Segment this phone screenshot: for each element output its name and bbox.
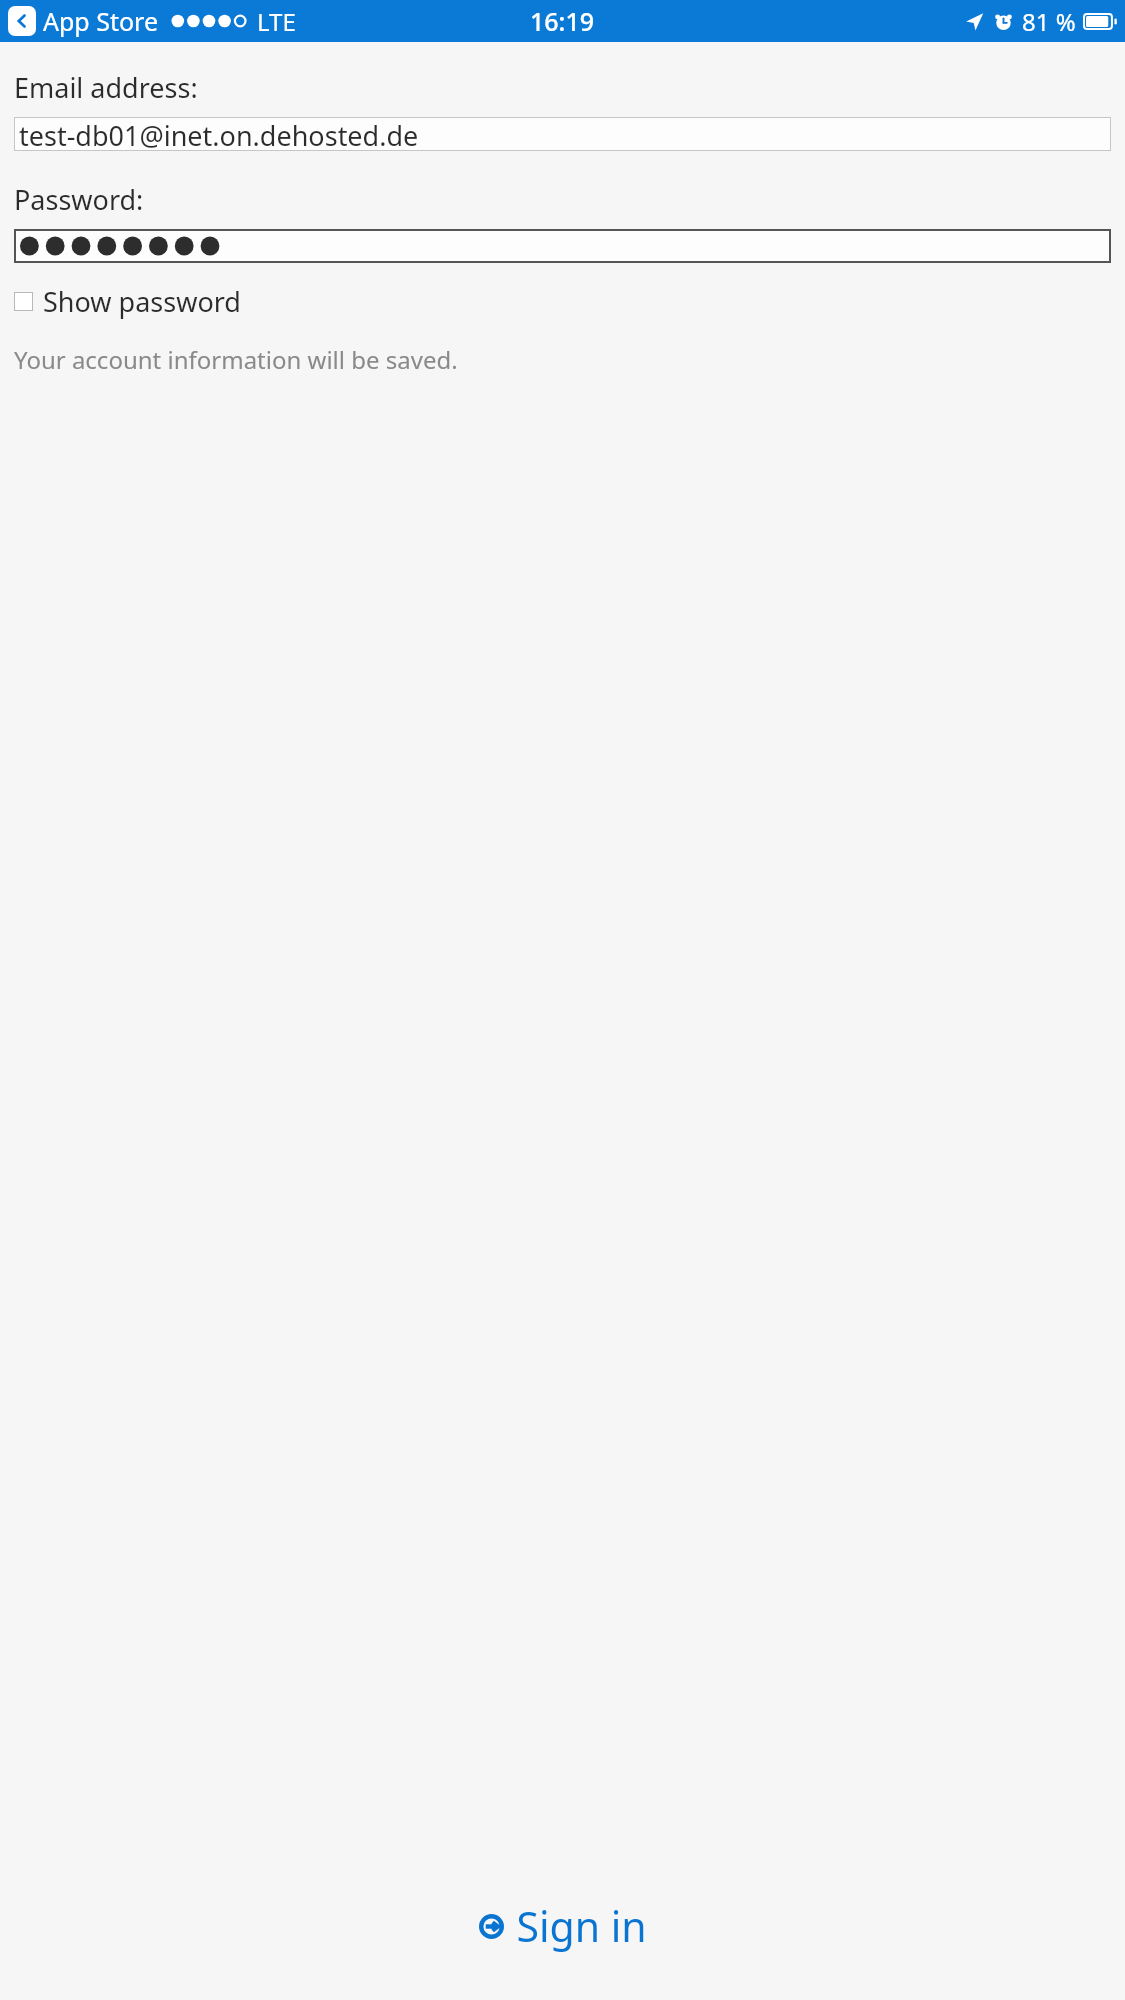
staticText: LTE [257, 5, 296, 38]
staticText: 81 % [1022, 5, 1076, 38]
staticText: 16:19 [530, 4, 595, 38]
staticText: Password: [14, 181, 144, 218]
staticText: Sign in [516, 1898, 647, 1954]
staticText: Email address: [14, 69, 198, 106]
staticText: App Store [43, 4, 159, 38]
staticText: Your account information will be saved. [14, 343, 458, 376]
staticText: test-db01@inet.on.dehosted.de [19, 117, 419, 151]
button[interactable]: Back to App Store [6, 4, 298, 38]
button[interactable]: Sign in [463, 1890, 663, 1962]
button[interactable] [14, 229, 1111, 263]
staticText: Show password [43, 283, 241, 320]
button[interactable]: Show password [14, 281, 241, 322]
button[interactable]: test-db01@inet.on.dehosted.de [14, 117, 1111, 151]
